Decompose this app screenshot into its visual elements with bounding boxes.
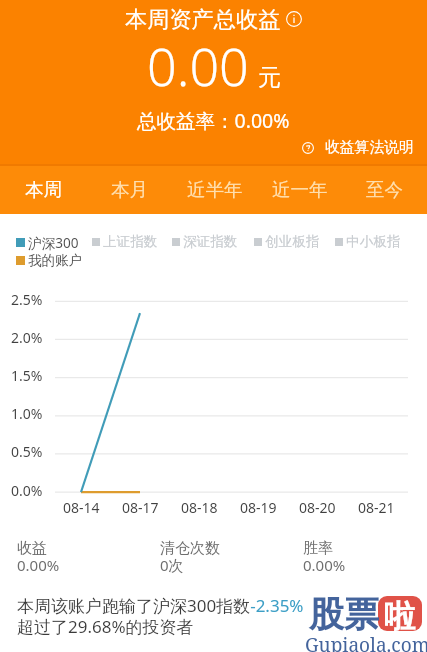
button[interactable]: 近半年: [172, 165, 257, 214]
staticText: 08-14: [63, 498, 100, 517]
staticText: 2.5%: [11, 290, 43, 309]
staticText: 08-20: [299, 498, 336, 517]
staticText: Gupiaola.com: [305, 632, 427, 652]
staticText: 2.0%: [11, 328, 43, 347]
button[interactable]: 本周: [0, 165, 86, 214]
staticText: 创业板指: [265, 233, 320, 250]
staticText: 收益算法说明: [325, 138, 414, 157]
staticText: 0.0%: [11, 481, 43, 500]
button[interactable]: 中小板指: [335, 233, 401, 250]
button[interactable]: 沪深300: [16, 233, 79, 252]
button[interactable]: 近一年: [257, 165, 342, 214]
button[interactable]: 我的账户: [16, 252, 83, 269]
staticText: 本周该账户跑输了沪深300指数-2.35% 超过了29.68%的投资者: [17, 594, 304, 639]
staticText: 本月: [111, 178, 148, 201]
staticText: 08-18: [181, 498, 218, 517]
staticText: 本周: [25, 178, 62, 201]
button[interactable]: 深证指数: [172, 233, 238, 250]
staticText: 中小板指: [346, 233, 401, 250]
staticText: 0.00%: [17, 555, 60, 575]
staticText: 收益: [17, 539, 47, 558]
staticText: 股票: [309, 592, 379, 636]
staticText: 0.00: [147, 30, 249, 101]
staticText: 清仓次数: [160, 539, 220, 558]
button[interactable]: About total weekly profit: [286, 11, 302, 27]
staticText: 0.00%: [303, 555, 346, 575]
staticText: 上证指数: [103, 233, 158, 250]
staticText: 1.0%: [11, 404, 43, 423]
button[interactable]: 至今: [342, 165, 427, 214]
staticText: 本周资产总收益: [125, 6, 281, 34]
staticText: 近一年: [272, 178, 328, 201]
staticText: 08-19: [240, 498, 277, 517]
staticText: 啦: [384, 597, 415, 636]
staticText: 08-17: [122, 498, 159, 517]
staticText: 总收益率：0.00%: [137, 107, 290, 134]
staticText: 元: [258, 63, 281, 92]
staticText: 胜率: [303, 539, 333, 558]
staticText: 0次: [160, 555, 184, 575]
staticText: 我的账户: [28, 252, 83, 269]
staticText: 近半年: [187, 178, 243, 201]
staticText: 08-21: [358, 498, 395, 517]
staticText: 至今: [366, 178, 403, 201]
button[interactable]: 创业板指: [254, 233, 320, 250]
staticText: 1.5%: [11, 366, 43, 385]
button[interactable]: 上证指数: [92, 233, 158, 250]
staticText: 深证指数: [183, 233, 238, 250]
staticText: 沪深300: [28, 233, 79, 252]
button[interactable]: 本月: [86, 165, 172, 214]
staticText: 0.5%: [11, 442, 43, 461]
button[interactable]: 收益算法说明: [302, 138, 414, 157]
